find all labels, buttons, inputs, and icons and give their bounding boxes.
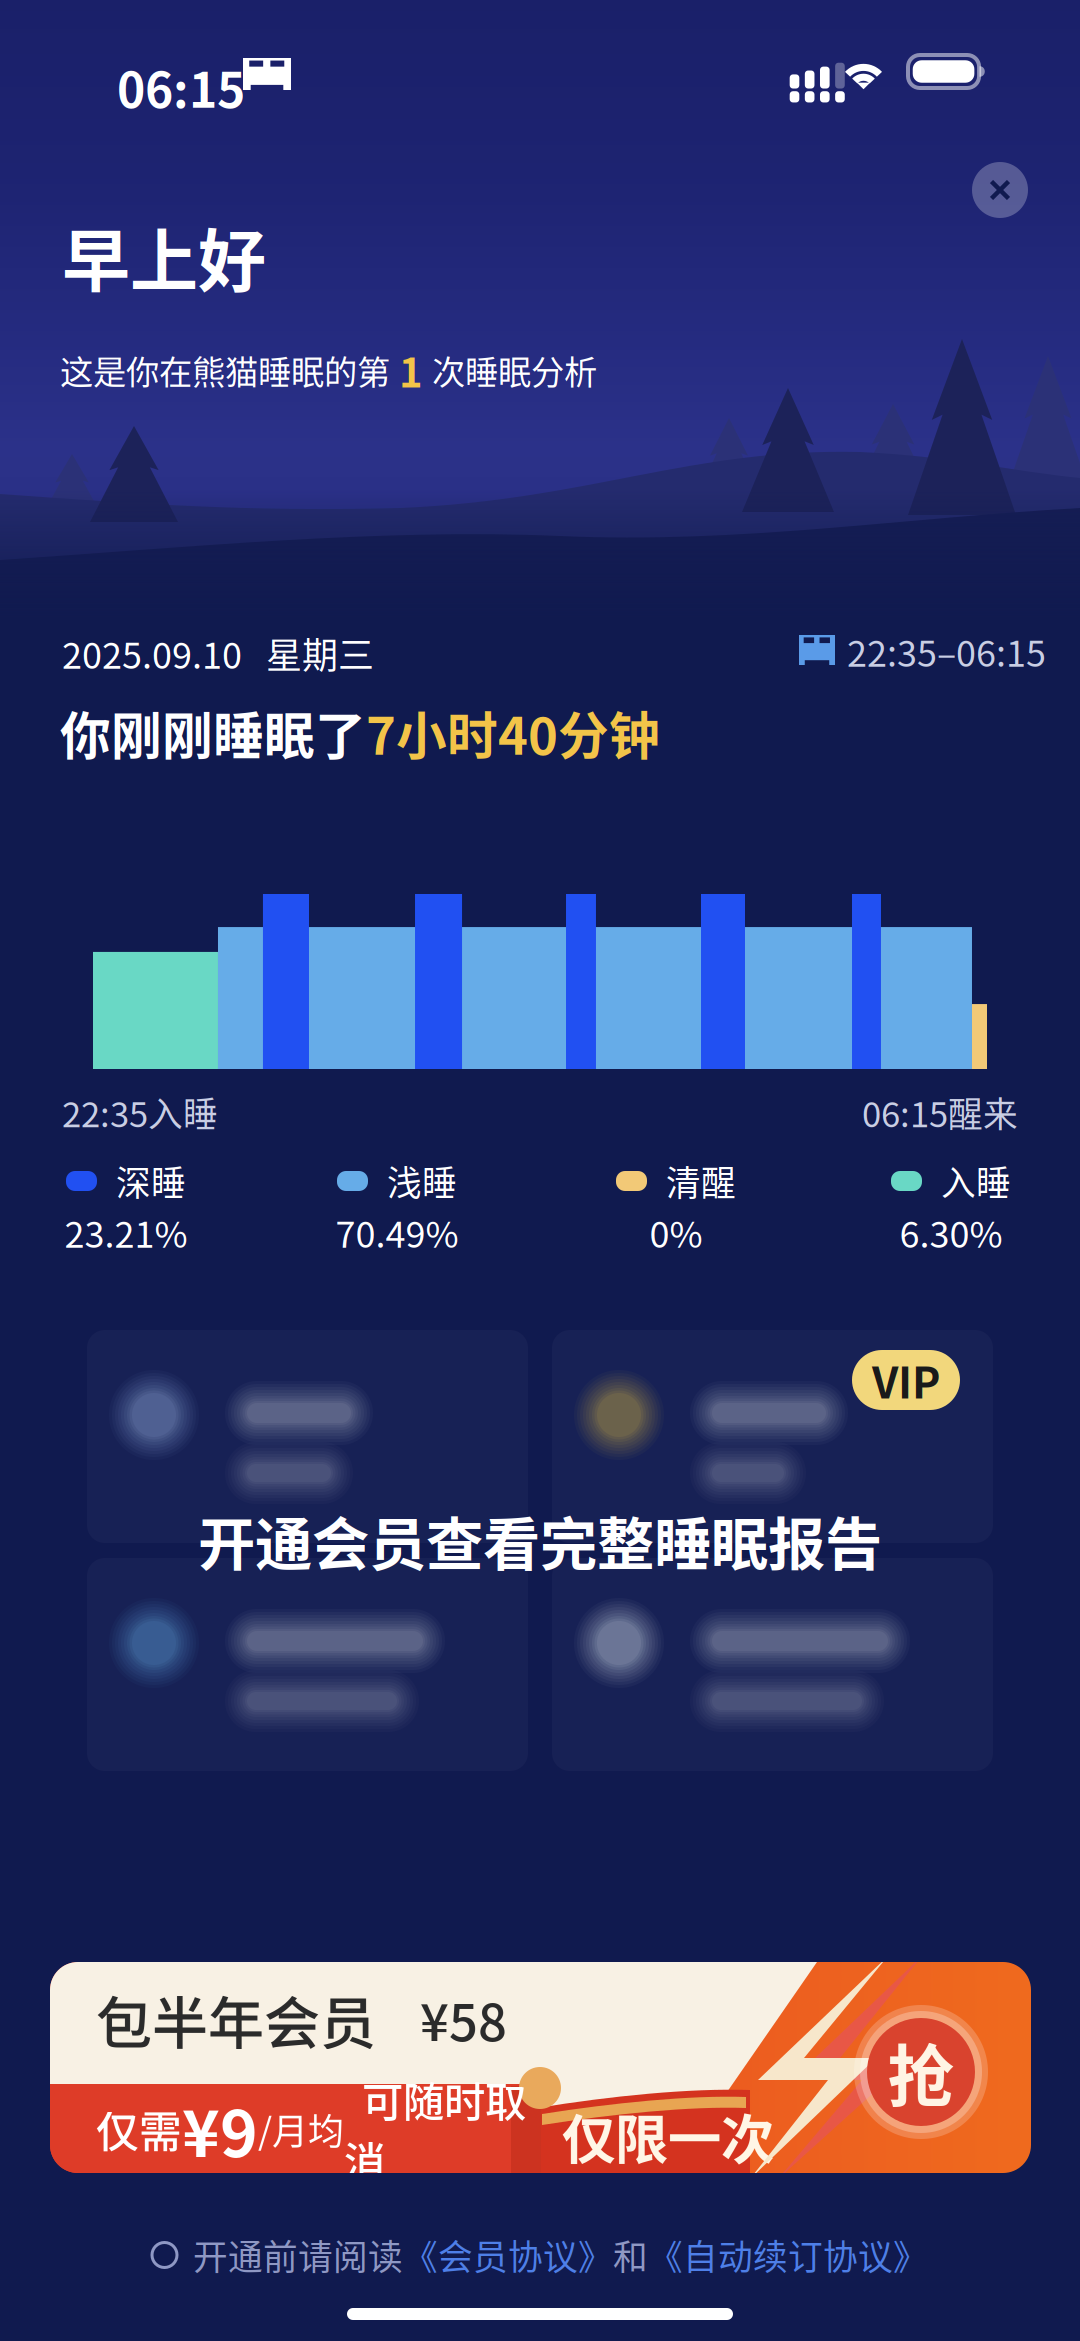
staticText: VIP (872, 1349, 940, 1411)
staticText: 开通会员查看完整睡眠报告 (198, 1498, 882, 1581)
staticText: 仅限一次 (562, 2097, 774, 2175)
staticText: 清醒 (666, 1156, 736, 1206)
staticText: 次睡眠分析 (432, 346, 597, 394)
staticText: 06:15 (117, 52, 245, 121)
staticText: 入睡 (941, 1156, 1011, 1206)
staticText: 22:35入睡 (62, 1087, 218, 1137)
staticText: 你刚刚睡眠了 (60, 696, 366, 769)
staticText: 23.21% (64, 1206, 187, 1258)
staticText: 7小时40分钟 (366, 696, 660, 769)
staticText: 70.49% (335, 1206, 458, 1258)
staticText: ¥9 (182, 2083, 258, 2175)
staticText: 可随时取消 (344, 2069, 526, 2189)
staticText: 仅需 (96, 2098, 182, 2160)
button[interactable]: 仅限一次 (50, 1962, 1031, 2173)
staticText: 抢 (887, 2024, 954, 2120)
staticText: 《会员协议》 (403, 2230, 613, 2280)
staticText: 包半年会员 (96, 1978, 376, 2060)
staticText: 和 (613, 2230, 648, 2280)
button[interactable]: 关闭 (972, 162, 1028, 218)
staticText: 2025.09.10 星期三 (62, 627, 374, 679)
staticText: ¥58 (376, 1982, 507, 2056)
staticText: 这是你在熊猫睡眠的第 (60, 346, 390, 394)
staticText: /月均 (258, 2103, 344, 2155)
staticText: 22:35–06:15 (847, 625, 1046, 677)
staticText: 6.30% (899, 1206, 1002, 1258)
staticText: 《自动续订协议》 (648, 2230, 928, 2280)
staticText: 开通前请阅读 (177, 2230, 403, 2280)
staticText: 0% (649, 1206, 702, 1258)
staticText: 06:15醒来 (862, 1087, 1018, 1137)
staticText: 1 (390, 341, 432, 399)
staticText: 深睡 (116, 1156, 186, 1206)
staticText: 浅睡 (387, 1156, 457, 1206)
staticText: 早上好 (62, 207, 266, 305)
